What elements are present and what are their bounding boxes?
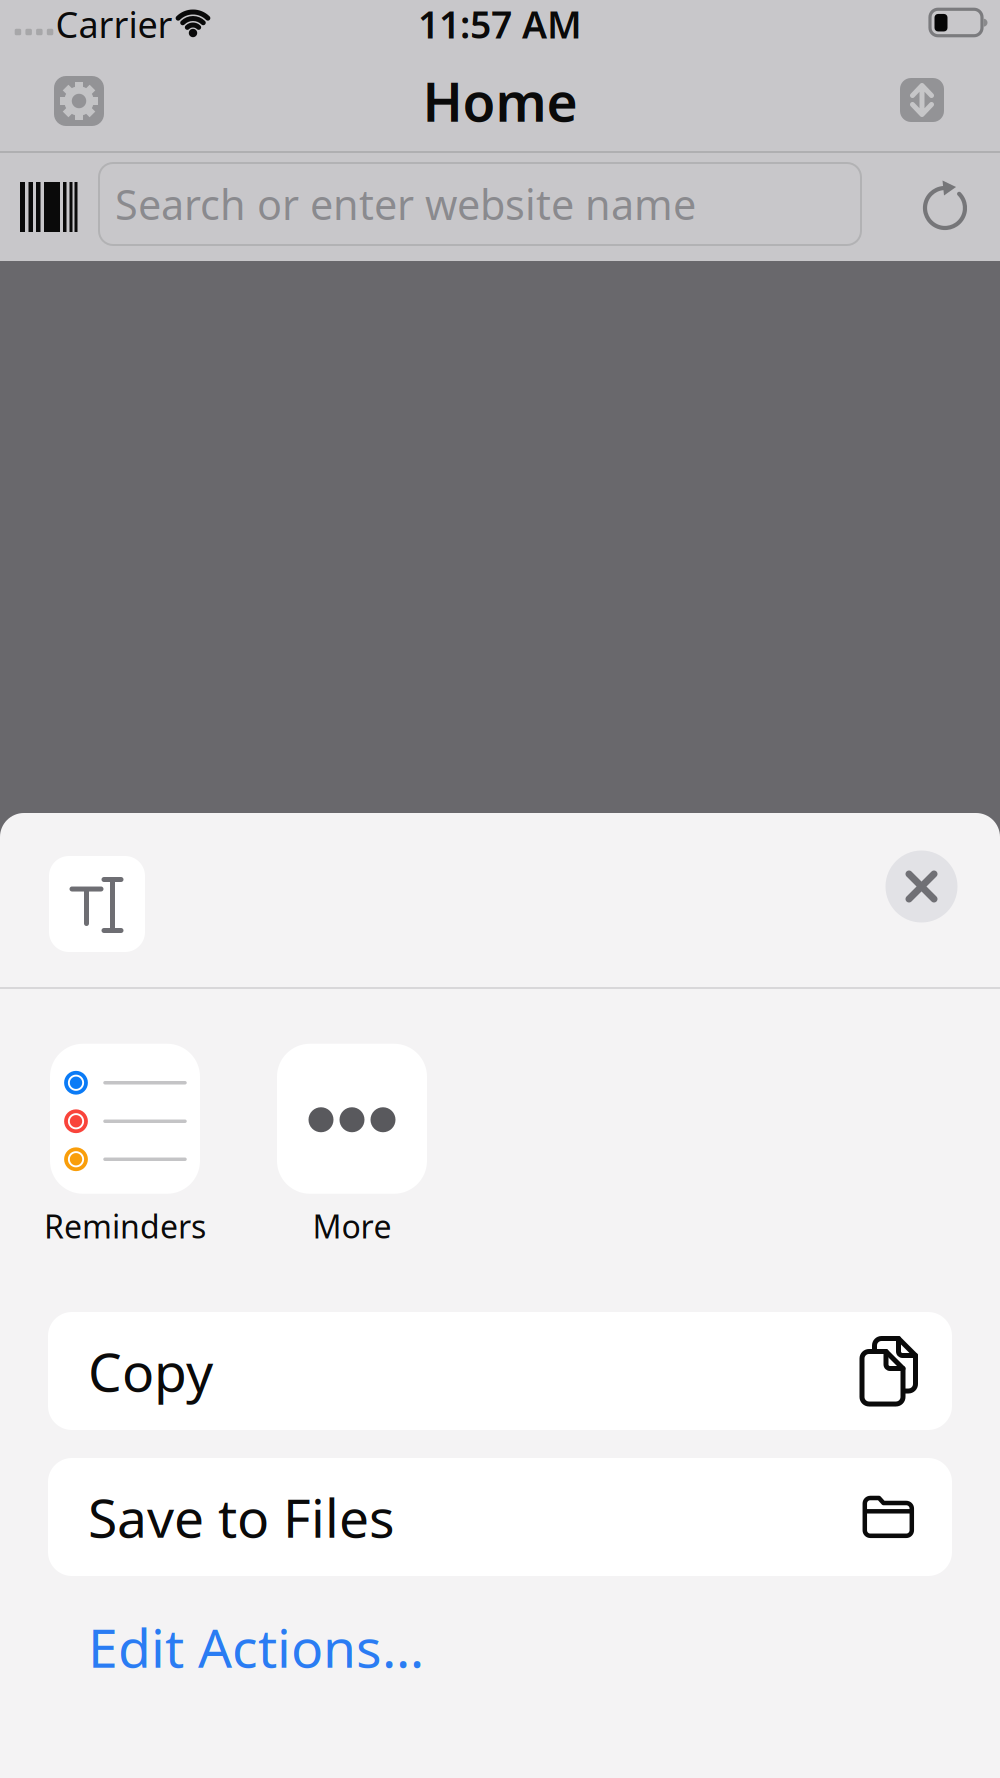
staticText: Copy: [88, 1336, 213, 1406]
button[interactable]: Close: [885, 850, 957, 922]
button[interactable]: Edit Actions…: [48, 1612, 952, 1682]
button[interactable]: Reminders: [44, 1044, 206, 1247]
button[interactable]: Move toolbar: [900, 78, 944, 122]
button[interactable]: Save to Files: [48, 1458, 952, 1576]
staticText: Save to Files: [88, 1482, 395, 1552]
staticText: More: [312, 1205, 391, 1247]
button[interactable]: More: [277, 1044, 427, 1247]
button[interactable]: Settings: [54, 76, 104, 126]
button[interactable]: Copy: [48, 1312, 952, 1430]
button[interactable]: Search or enter website name: [99, 163, 861, 245]
staticText: Reminders: [44, 1205, 206, 1247]
button[interactable]: Reload: [913, 174, 977, 238]
staticText: 11:57 AM: [418, 0, 582, 49]
staticText: Search or enter website name: [115, 177, 696, 231]
staticText: Carrier: [55, 0, 172, 48]
staticText: Edit Actions…: [88, 1612, 424, 1682]
staticText: Home: [422, 66, 577, 136]
button[interactable]: Scan barcode: [19, 182, 77, 232]
